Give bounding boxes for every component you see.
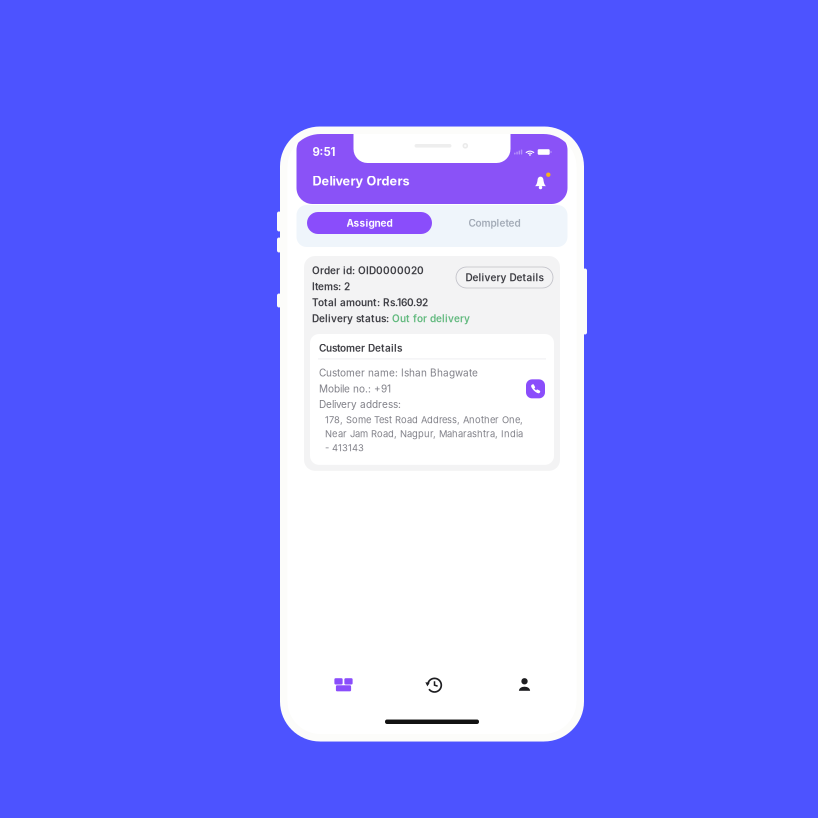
button[interactable]: Call customer <box>526 379 545 398</box>
staticText: Near Jam Road, Nagpur, Maharashtra, Indi… <box>325 428 523 439</box>
staticText: - 413143 <box>325 442 364 453</box>
button[interactable]: Assigned <box>307 212 432 234</box>
staticText: Out for delivery <box>392 312 470 325</box>
staticText: Total amount: Rs.160.92 <box>312 296 428 309</box>
staticText: Delivery Details <box>465 271 543 284</box>
staticText: Items: 2 <box>312 280 350 293</box>
button[interactable]: Delivery Details <box>456 267 553 288</box>
staticText: Customer name: Ishan Bhagwate <box>319 367 478 379</box>
staticText: 178, Some Test Road Address, Another One… <box>325 414 523 425</box>
button[interactable]: Completed <box>432 212 557 234</box>
staticText: Delivery address: <box>319 398 401 410</box>
staticText: Delivery Orders <box>312 173 409 189</box>
staticText: 9:51 <box>312 145 335 159</box>
button[interactable]: Profile <box>498 671 550 697</box>
button[interactable]: Notifications <box>532 171 551 190</box>
staticText: Mobile no.: +91 <box>319 383 391 395</box>
staticText: Delivery status: <box>312 312 389 325</box>
staticText: Customer Details <box>319 342 402 354</box>
staticText: Completed <box>468 217 520 229</box>
button[interactable]: Orders <box>317 671 369 697</box>
staticText: Assigned <box>346 217 392 229</box>
staticText: Order id: OID0000020 <box>312 264 424 277</box>
button[interactable]: History <box>408 671 460 697</box>
